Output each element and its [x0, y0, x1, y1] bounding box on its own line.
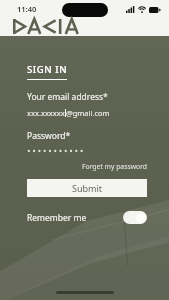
button[interactable]: Remember me [27, 211, 147, 224]
button[interactable]: Submit [27, 179, 147, 197]
staticText: xxx.xxxxxx [27, 108, 65, 118]
staticText: @gmail.com [66, 108, 110, 118]
button[interactable]: Forget my password [27, 162, 147, 171]
staticText: Forget my password [81, 162, 147, 171]
staticText: SIGN IN [27, 63, 68, 76]
staticText: Remember me [27, 212, 87, 224]
staticText: Your email address* [27, 91, 108, 103]
button[interactable]: Remember me toggle [123, 211, 147, 224]
staticText: Submit [72, 182, 103, 194]
staticText: Password* [27, 130, 71, 142]
staticText: 11:40 [17, 4, 37, 14]
